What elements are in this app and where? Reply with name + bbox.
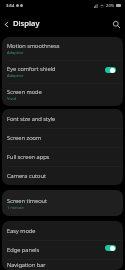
button[interactable]: Navigation bar xyxy=(2,259,123,270)
button[interactable]: Toggle xyxy=(105,245,116,251)
button[interactable]: Screen mode xyxy=(2,83,123,106)
staticText: Display xyxy=(13,18,40,28)
staticText: Camera cutout xyxy=(7,172,46,180)
staticText: Eye comfort shield xyxy=(7,65,56,73)
button[interactable]: Easy mode xyxy=(2,221,123,240)
staticText: 3:54 xyxy=(6,3,15,9)
staticText: Vivid xyxy=(7,96,16,101)
staticText: Adaptive xyxy=(7,50,24,55)
button[interactable]: Eye comfort shield xyxy=(2,60,123,83)
button[interactable]: Motion smoothness xyxy=(2,37,123,60)
button[interactable]: Search xyxy=(110,18,123,31)
button[interactable]: Full screen apps xyxy=(2,147,123,166)
staticText: Motion smoothness xyxy=(7,42,60,50)
button[interactable]: Back xyxy=(0,18,12,30)
staticText: Screen mode xyxy=(7,88,42,96)
button[interactable]: Screen zoom xyxy=(2,128,123,147)
staticText: Font size and style xyxy=(7,115,56,123)
button[interactable]: Screen timeout xyxy=(2,190,123,216)
staticText: Full screen apps xyxy=(7,153,50,161)
button[interactable]: Edge panels xyxy=(2,240,123,259)
staticText: Navigation bar xyxy=(7,261,46,269)
button[interactable]: Camera cutout xyxy=(2,166,123,185)
button[interactable]: Font size and style xyxy=(2,109,123,128)
staticText: 1 minute xyxy=(7,205,24,210)
staticText: 20% xyxy=(106,3,115,9)
staticText: Screen timeout xyxy=(7,197,47,205)
staticText: Easy mode xyxy=(7,227,36,235)
button[interactable]: Toggle xyxy=(105,67,116,73)
staticText: Edge panels xyxy=(7,246,40,254)
staticText: Adaptive xyxy=(7,73,24,78)
staticText: Screen zoom xyxy=(7,134,42,142)
